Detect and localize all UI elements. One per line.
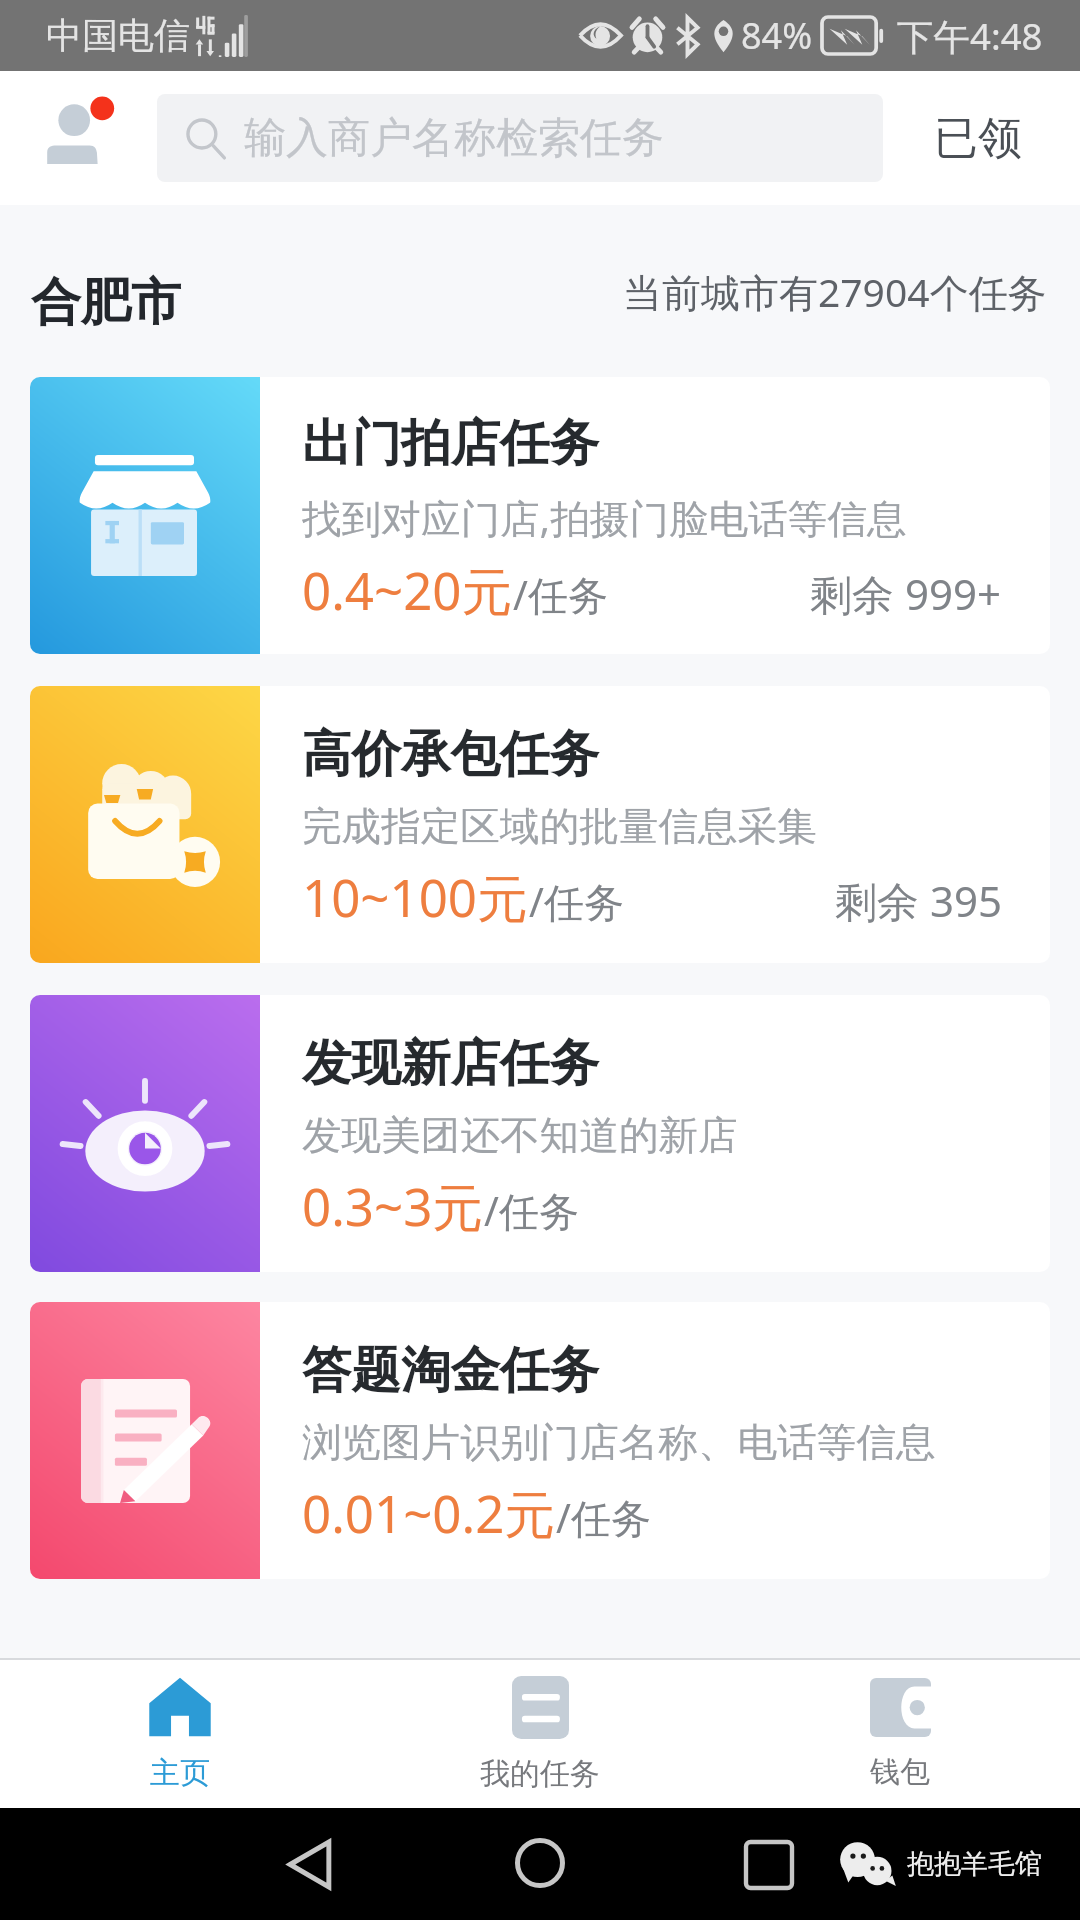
staticText: /任务 [556,1490,651,1545]
staticText: /任务 [529,874,624,929]
staticText: 完成指定区域的批量信息采集 [302,802,817,852]
button[interactable]: 主页 [0,1660,360,1808]
button[interactable]: Account [40,95,112,167]
staticText: 10~100元 [302,862,529,932]
staticText: 抱抱羊毛馆 [907,1847,1042,1881]
staticText: 0.01~0.2元 [302,1478,556,1548]
staticText: 发现美团还不知道的新店 [302,1111,738,1161]
staticText: 当前城市有27904个任务 [623,265,1047,318]
button[interactable]: 钱包 [720,1660,1080,1808]
staticText: 84% [741,11,813,60]
button[interactable]: 发现新店任务 [30,995,1050,1272]
staticText: 合肥市 [31,271,181,334]
staticText: 高价承包任务 [302,723,599,785]
staticText: 中国电信 [46,13,190,58]
staticText: 出门拍店任务 [302,412,599,474]
staticText: 找到对应门店,拍摄门脸电话等信息 [302,491,907,545]
staticText: 钱包 [870,1753,930,1791]
staticText: 剩余 395 [835,872,1002,929]
staticText: 我的任务 [480,1755,600,1793]
staticText: 剩余 999+ [810,565,1002,622]
staticText: 浏览图片识别门店名称、电话等信息 [302,1418,936,1468]
button[interactable]: 答题淘金任务 [30,1302,1050,1579]
button[interactable]: Back [278,1833,340,1895]
staticText: 0.3~3元 [302,1171,484,1241]
staticText: /任务 [513,567,608,622]
button[interactable]: 出门拍店任务 [30,377,1050,654]
staticText: 已领 [934,111,1022,166]
staticText: 下午4:48 [897,11,1043,61]
button[interactable]: 输入商户名称检索任务 [157,94,883,182]
staticText: /任务 [484,1183,579,1238]
button[interactable]: 高价承包任务 [30,686,1050,963]
staticText: 主页 [150,1754,210,1792]
staticText: 发现新店任务 [302,1032,599,1094]
staticText: 答题淘金任务 [302,1339,599,1401]
staticText: 输入商户名称检索任务 [244,112,664,165]
button[interactable]: 已领 [928,101,1028,176]
staticText: 0.4~20元 [302,555,513,625]
button[interactable]: Home [509,1832,571,1894]
button[interactable]: 我的任务 [360,1660,720,1808]
button[interactable]: Recent apps [738,1834,800,1896]
